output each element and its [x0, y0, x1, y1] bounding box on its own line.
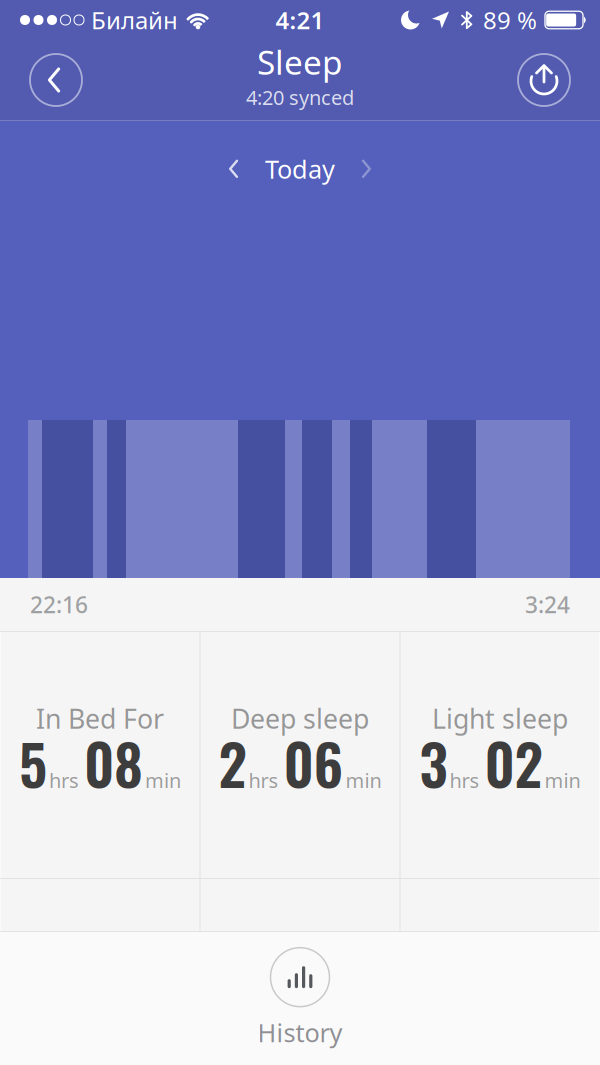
button[interactable]: Back	[30, 54, 82, 106]
staticText: 02	[484, 721, 542, 804]
button[interactable]: Share	[518, 54, 570, 106]
staticText: min	[345, 767, 381, 794]
staticText: Билайн	[91, 4, 178, 36]
staticText: hrs	[449, 767, 479, 794]
staticText: hrs	[49, 767, 79, 794]
staticText: In Bed For	[36, 701, 164, 736]
staticText: 89 %	[483, 4, 537, 36]
staticText: 3	[419, 721, 447, 804]
button[interactable]: Previous day	[219, 153, 251, 185]
staticText: min	[145, 767, 181, 794]
staticText: min	[544, 767, 580, 794]
button[interactable]: History	[257, 948, 342, 1049]
staticText: History	[257, 1016, 342, 1049]
staticText: 06	[283, 721, 343, 804]
button[interactable]: Next day	[349, 153, 381, 185]
staticText: 5	[19, 721, 47, 804]
staticText: 08	[84, 721, 143, 804]
staticText: Sleep	[257, 40, 343, 84]
staticText: Today	[265, 152, 335, 186]
staticText: 2	[218, 721, 246, 804]
staticText: 4:21	[275, 4, 324, 36]
staticText: 22:16	[30, 589, 88, 619]
staticText: Light sleep	[432, 701, 568, 736]
staticText: hrs	[248, 767, 278, 794]
staticText: Deep sleep	[231, 701, 369, 736]
staticText: 3:24	[525, 589, 570, 619]
staticText: 4:20 synced	[246, 84, 354, 110]
